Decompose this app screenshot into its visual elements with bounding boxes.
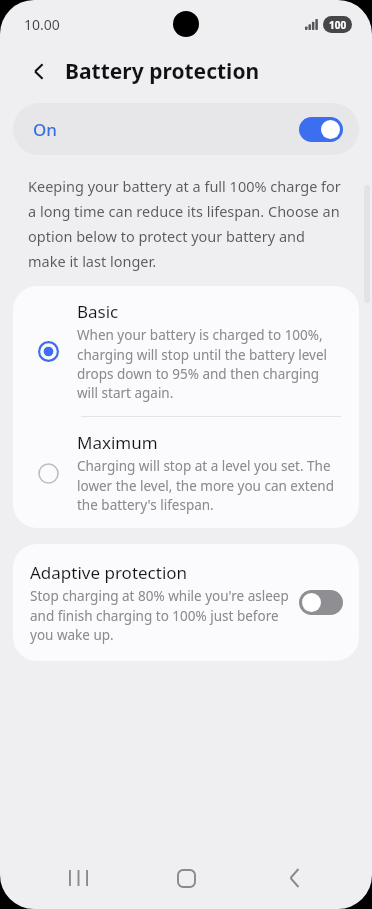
staticText: Charging will stop at a level you set. T… <box>77 457 341 514</box>
button[interactable]: Home <box>156 848 216 908</box>
staticText: Maximum <box>77 431 158 454</box>
button[interactable]: Adaptive protection <box>13 544 359 661</box>
staticText: On <box>33 118 57 141</box>
staticText: When your battery is charged to 100%, ch… <box>77 326 341 402</box>
staticText: Keeping your battery at a full 100% char… <box>28 176 346 271</box>
button[interactable]: Turn off <box>299 117 343 142</box>
button[interactable]: Maximum <box>13 417 359 528</box>
button[interactable]: Recents <box>48 848 108 908</box>
staticText: Stop charging at 80% while you're asleep… <box>30 587 289 644</box>
button[interactable]: Turn on <box>299 590 343 615</box>
button[interactable]: Back <box>22 54 56 88</box>
button[interactable]: Back <box>264 848 324 908</box>
staticText: Adaptive protection <box>30 561 188 584</box>
staticText: 10.00 <box>24 15 60 34</box>
staticText: Battery protection <box>65 57 260 86</box>
staticText: 100 <box>329 18 347 32</box>
button[interactable]: Basic <box>13 286 359 416</box>
staticText: Basic <box>77 300 119 323</box>
button[interactable]: On <box>13 103 359 155</box>
